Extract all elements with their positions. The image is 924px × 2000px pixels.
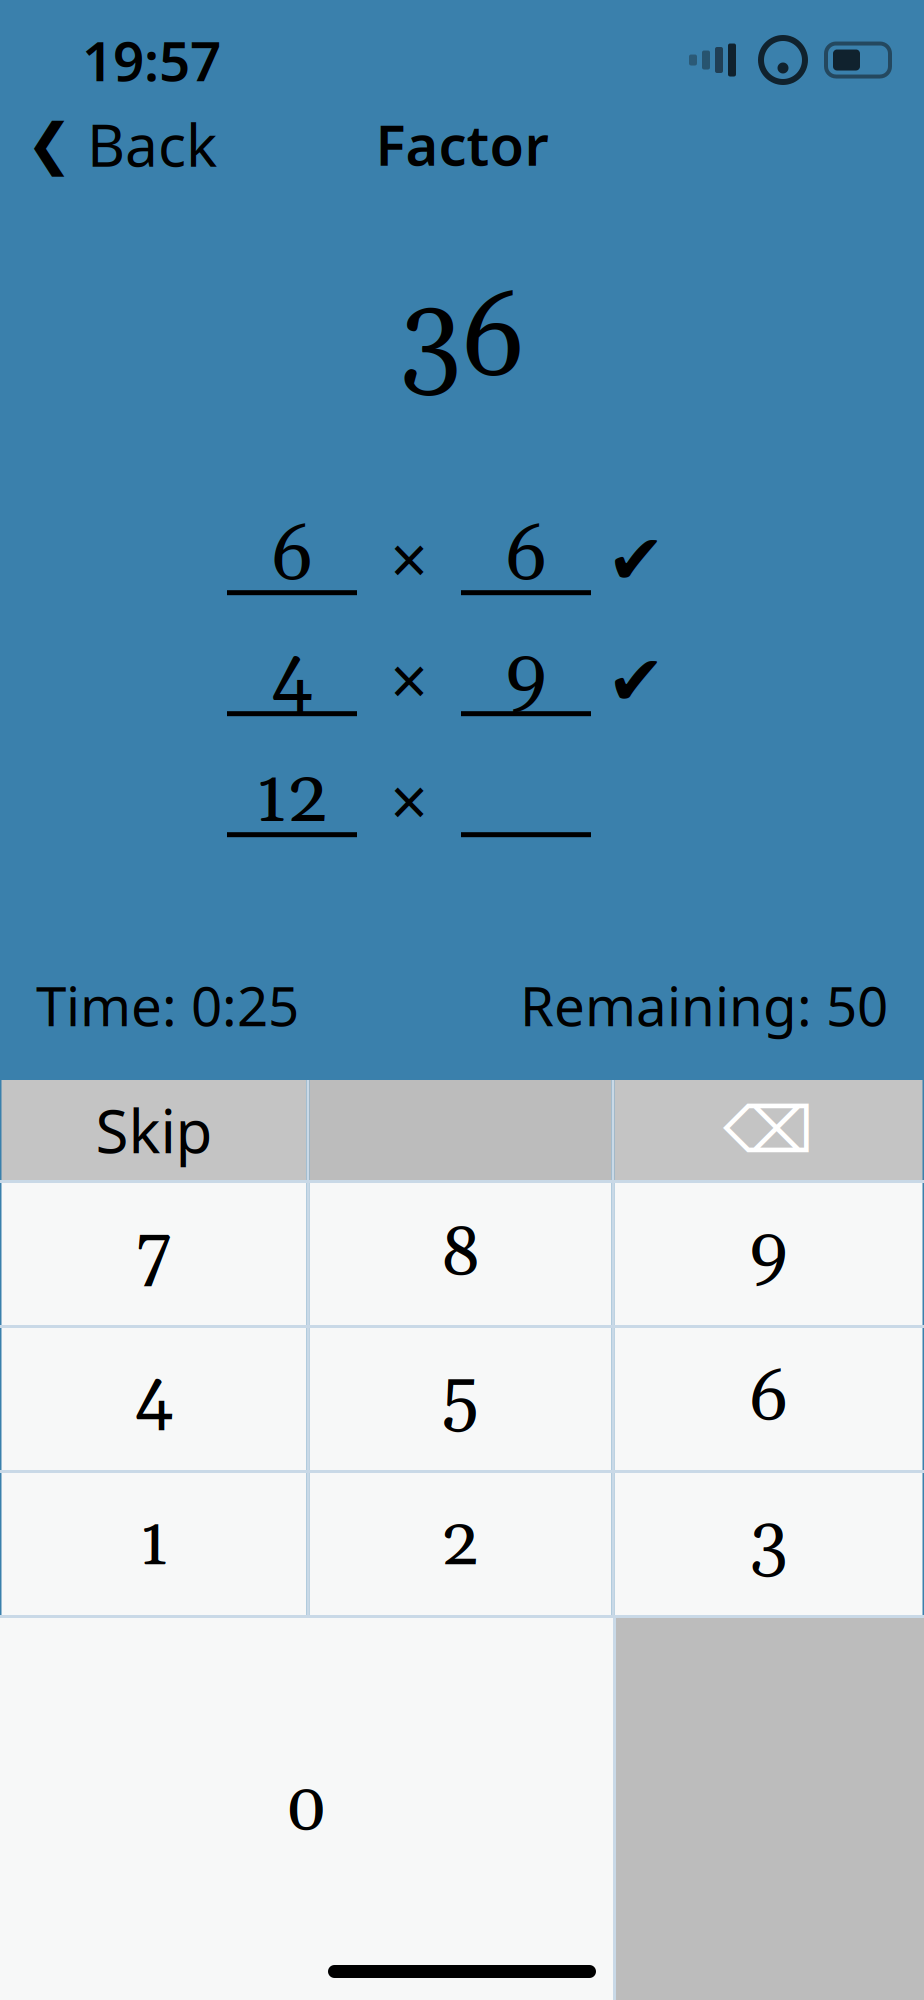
staticText: ×	[388, 519, 429, 600]
staticText: 9	[505, 631, 547, 726]
staticText: 4	[134, 1355, 173, 1443]
button[interactable]: 3	[614, 1473, 922, 1615]
staticText: ❮	[26, 112, 73, 176]
staticText: Skip	[95, 1090, 212, 1170]
button[interactable]: 1	[1, 1473, 306, 1615]
button[interactable]: 8	[309, 1183, 611, 1325]
button[interactable]: 9	[614, 1183, 922, 1325]
staticText: 5	[442, 1355, 479, 1443]
button[interactable]: Delete	[614, 1080, 922, 1180]
button[interactable]: ❮	[0, 93, 217, 195]
staticText: 12	[255, 752, 329, 847]
staticText: Time: 0:25	[36, 969, 299, 1041]
staticText: Remaining: 50	[520, 969, 888, 1041]
staticText: 6	[749, 1355, 788, 1443]
staticText: 6	[505, 510, 547, 605]
staticText: Back	[87, 105, 217, 183]
staticText: Factor	[375, 107, 548, 181]
button[interactable]: 5	[309, 1328, 611, 1470]
button[interactable]: 6	[614, 1328, 922, 1470]
staticText: ×	[388, 640, 429, 721]
staticText: 6	[271, 510, 313, 605]
staticText: 9	[749, 1210, 788, 1298]
button[interactable]: 7	[1, 1183, 306, 1325]
staticText: ✔	[607, 520, 665, 599]
staticText: 0	[285, 1765, 328, 1853]
staticText: ⌫	[723, 1094, 814, 1166]
button[interactable]: 4	[1, 1328, 306, 1470]
staticText: 7	[136, 1210, 171, 1298]
staticText: 4	[271, 631, 313, 726]
button[interactable]: Skip	[1, 1080, 306, 1180]
staticText: 36	[399, 270, 524, 412]
staticText: 8	[440, 1210, 481, 1298]
button[interactable]: 2	[309, 1473, 611, 1615]
staticText: 1	[139, 1500, 169, 1588]
button[interactable]: 0	[0, 1618, 613, 2000]
staticText: 3	[749, 1500, 787, 1588]
staticText: ×	[388, 761, 429, 842]
staticText: 2	[441, 1500, 480, 1588]
staticText: 19:57	[82, 24, 221, 96]
staticText: ✔	[607, 641, 665, 720]
